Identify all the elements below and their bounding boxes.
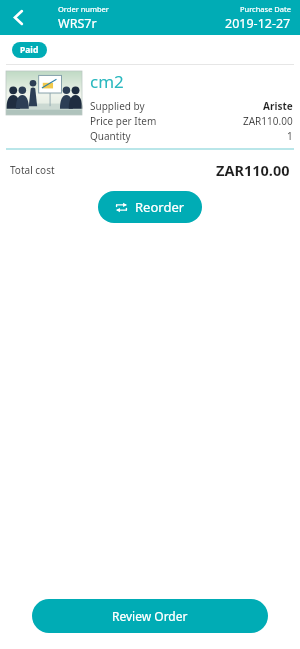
staticText: Supplied by [90, 99, 145, 113]
staticText: ZAR110.00 [243, 114, 293, 128]
staticText: Quantity [90, 129, 131, 143]
button[interactable]: Back [0, 0, 36, 35]
staticText: Ariste [263, 99, 293, 113]
button[interactable]: Review Order [32, 599, 268, 633]
staticText: Total cost [10, 163, 55, 177]
button[interactable]: Reorder [98, 191, 202, 223]
staticText: Order number [58, 4, 109, 14]
staticText: Reorder [135, 198, 185, 216]
button[interactable]: Paid [12, 42, 47, 58]
staticText: 1 [287, 129, 293, 143]
staticText: ZAR110.00 [216, 160, 290, 180]
staticText: Purchase Date [240, 4, 291, 14]
staticText: 2019-12-27 [225, 15, 291, 32]
staticText: Review Order [112, 608, 188, 624]
staticText: WRS7r [58, 15, 97, 32]
staticText: Price per Item [90, 114, 157, 128]
staticText: cm2 [90, 70, 124, 93]
staticText: Paid [20, 44, 39, 56]
